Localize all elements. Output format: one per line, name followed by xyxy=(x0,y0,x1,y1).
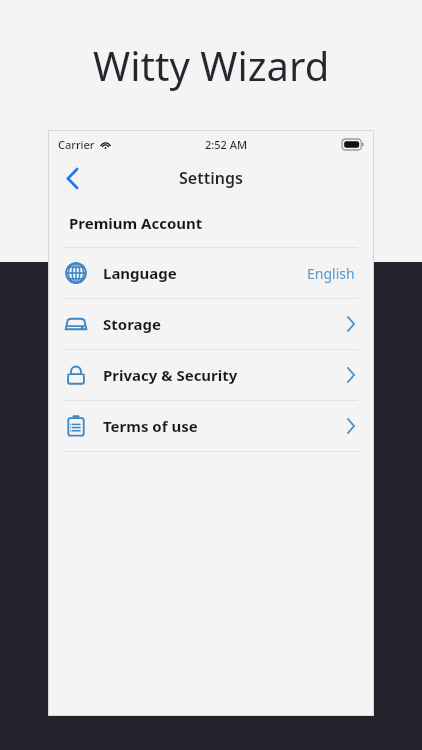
staticText: Premium Account xyxy=(69,213,203,233)
button[interactable]: Privacy & Security xyxy=(49,350,373,400)
staticText: Carrier xyxy=(58,137,95,152)
staticText: Privacy & Security xyxy=(103,365,238,385)
staticText: Language xyxy=(103,263,177,283)
staticText: English xyxy=(307,264,355,283)
button[interactable]: Terms of use xyxy=(49,401,373,451)
staticText: Terms of use xyxy=(103,416,198,436)
staticText: Storage xyxy=(103,314,161,334)
button[interactable]: Storage xyxy=(49,299,373,349)
staticText: 2:52 AM xyxy=(205,137,248,152)
staticText: Settings xyxy=(179,167,243,189)
button[interactable]: Language xyxy=(49,248,373,298)
button[interactable]: Back xyxy=(53,159,91,197)
staticText: Witty Wizard xyxy=(93,38,330,92)
